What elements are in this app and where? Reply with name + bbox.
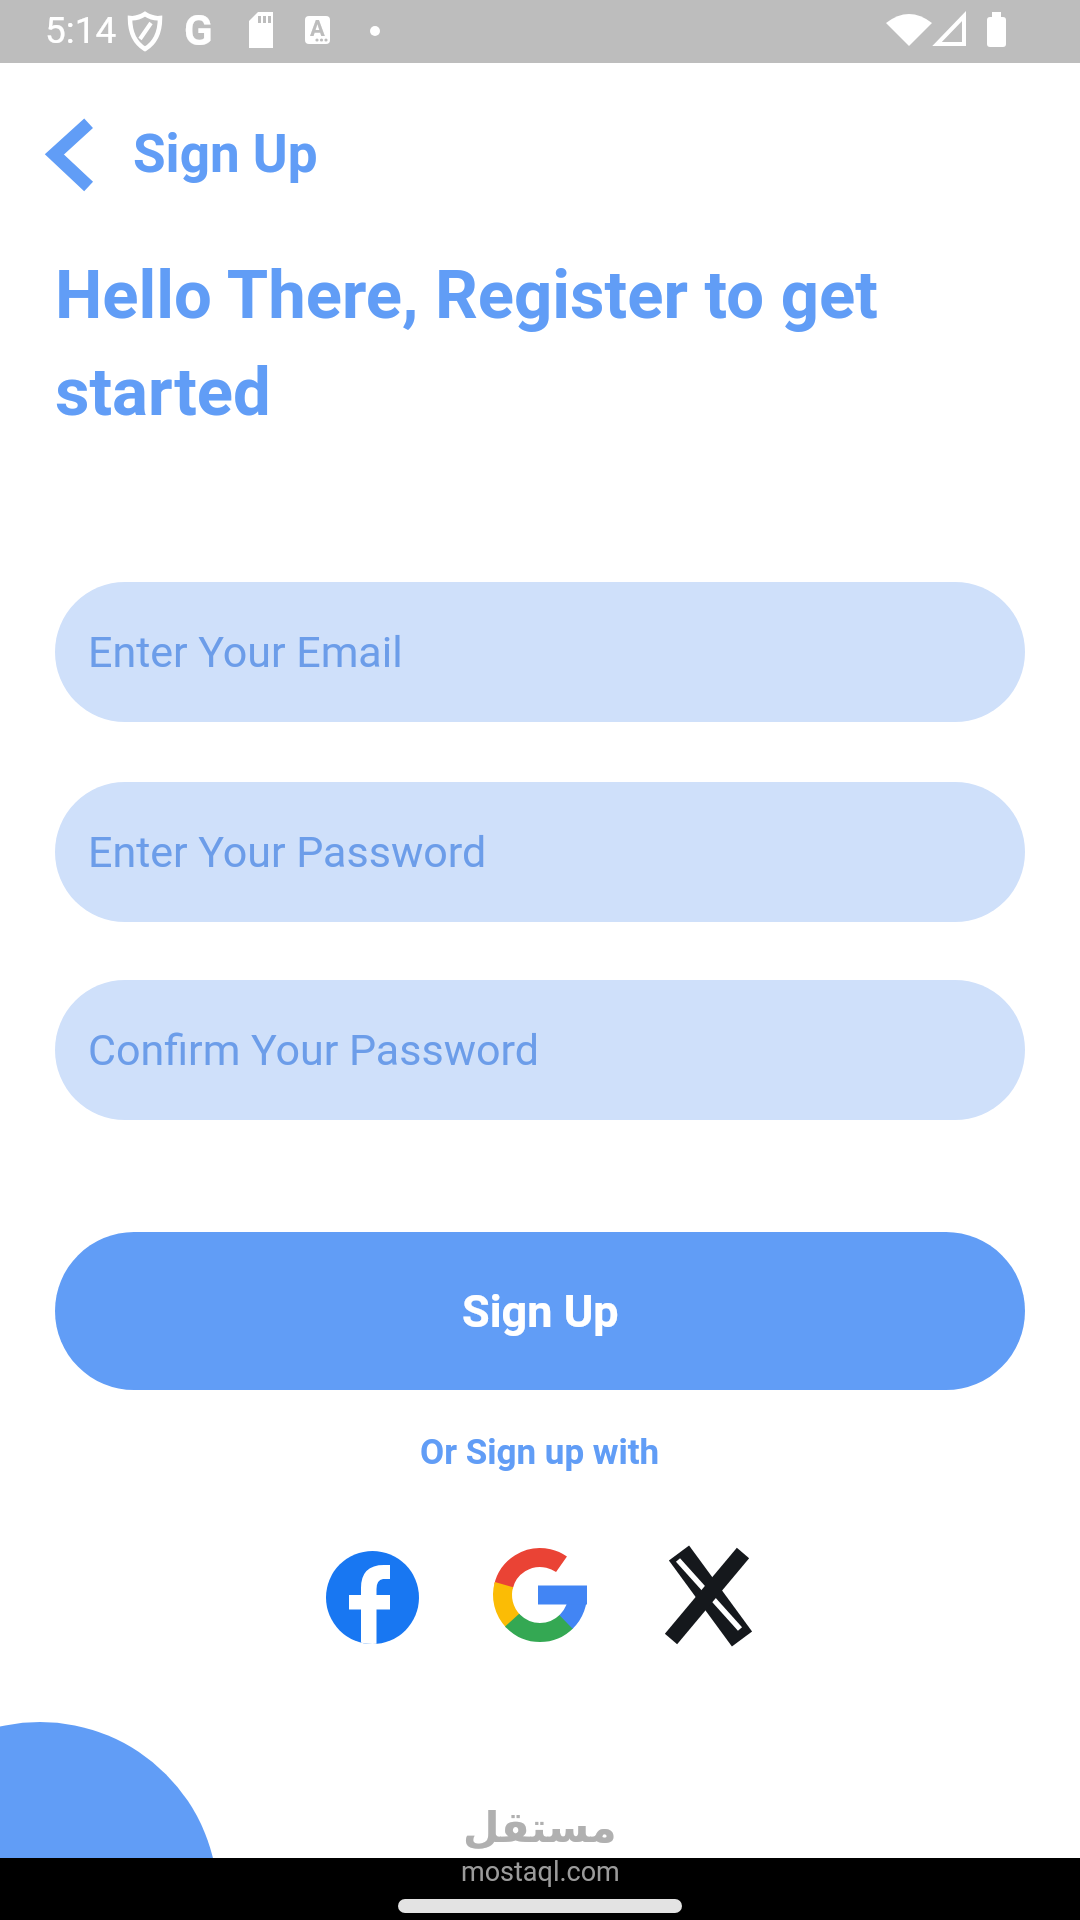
staticText: Or Sign up with — [420, 1432, 660, 1473]
staticText: مستقل — [463, 1803, 617, 1852]
staticText: 5:14 — [45, 9, 117, 52]
button[interactable] — [493, 1548, 587, 1642]
button[interactable] — [326, 1551, 419, 1644]
button[interactable] — [663, 1553, 757, 1639]
button[interactable]: Enter Your Password — [55, 782, 1025, 922]
button[interactable]: Sign Up — [48, 110, 338, 196]
staticText: Confirm Your Password — [88, 1025, 539, 1075]
staticText: G — [184, 6, 213, 55]
staticText: A — [310, 16, 325, 42]
button[interactable]: Confirm Your Password — [55, 980, 1025, 1120]
button[interactable]: Sign Up — [55, 1232, 1025, 1390]
staticText: Hello There, Register to get started — [55, 256, 985, 431]
staticText: Sign Up — [462, 1285, 619, 1338]
staticText: Enter Your Password — [88, 827, 487, 877]
button[interactable]: Enter Your Email — [55, 582, 1025, 722]
staticText: Enter Your Email — [88, 627, 403, 677]
staticText: Sign Up — [133, 123, 318, 185]
staticText: mostaql.com — [461, 1856, 620, 1888]
